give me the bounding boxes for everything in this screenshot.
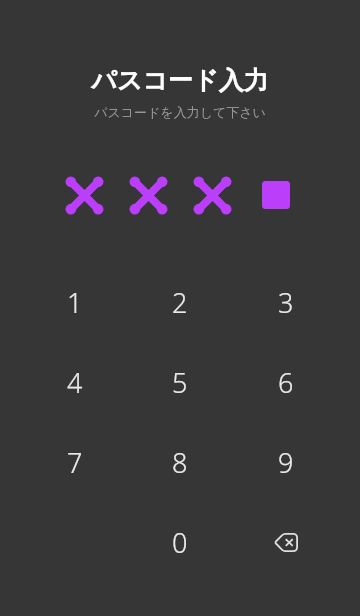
button[interactable]: 1 xyxy=(22,262,127,342)
staticText: 3 xyxy=(278,284,294,321)
staticText: 8 xyxy=(172,444,188,481)
staticText: 7 xyxy=(67,444,83,481)
button[interactable]: 5 xyxy=(127,342,233,422)
button[interactable]: 3 xyxy=(233,262,339,342)
staticText: 0 xyxy=(172,524,188,561)
button[interactable]: 4 xyxy=(22,342,127,422)
button[interactable]: 7 xyxy=(22,422,127,502)
button[interactable]: 6 xyxy=(233,342,339,422)
button[interactable]: 9 xyxy=(233,422,339,502)
staticText: 6 xyxy=(278,364,294,401)
button[interactable]: 0 xyxy=(127,502,233,582)
button[interactable]: 2 xyxy=(127,262,233,342)
staticText: パスコード入力 xyxy=(0,65,360,96)
staticText: 1 xyxy=(67,284,83,321)
staticText: 2 xyxy=(172,284,188,321)
staticText: パスコードを入力して下さい xyxy=(0,104,360,120)
staticText: 4 xyxy=(67,364,83,401)
button[interactable]: 8 xyxy=(127,422,233,502)
staticText: 5 xyxy=(172,364,188,401)
button[interactable]: Delete xyxy=(233,502,339,582)
staticText: 9 xyxy=(278,444,294,481)
